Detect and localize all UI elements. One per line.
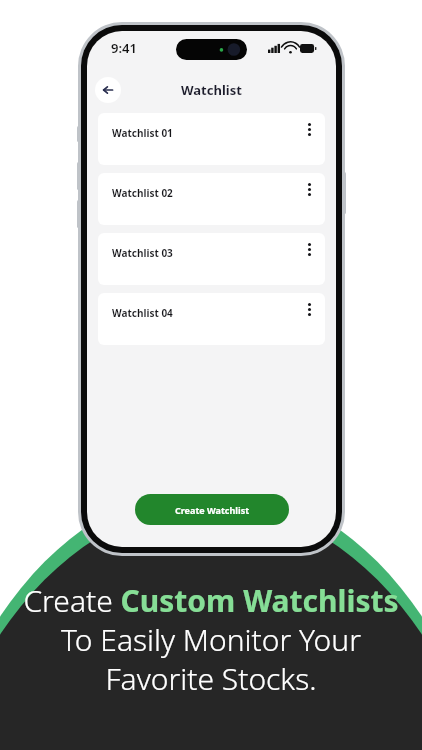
button[interactable]: Watchlist 01	[98, 113, 325, 165]
button[interactable]: Watchlist 04	[98, 293, 325, 345]
staticText: Create Watchlist	[175, 504, 250, 516]
staticText: Watchlist 02	[112, 186, 173, 200]
staticText: Watchlist 04	[112, 306, 173, 320]
button[interactable]: Watchlist 02	[98, 173, 325, 225]
button[interactable]: More options	[299, 119, 319, 139]
button[interactable]: Watchlist 03	[98, 233, 325, 285]
staticText: 9:41	[111, 39, 137, 57]
staticText: Watchlist 03	[112, 246, 173, 260]
staticText: Watchlist	[181, 81, 242, 99]
staticText: Watchlist 01	[112, 126, 173, 140]
button[interactable]: Back	[95, 77, 121, 103]
button[interactable]: More options	[299, 299, 319, 319]
button[interactable]: More options	[299, 179, 319, 199]
staticText: Create Custom Watchlists To Easily Monit…	[18, 580, 404, 698]
button[interactable]: More options	[299, 239, 319, 259]
button[interactable]: Create Watchlist	[135, 494, 289, 525]
